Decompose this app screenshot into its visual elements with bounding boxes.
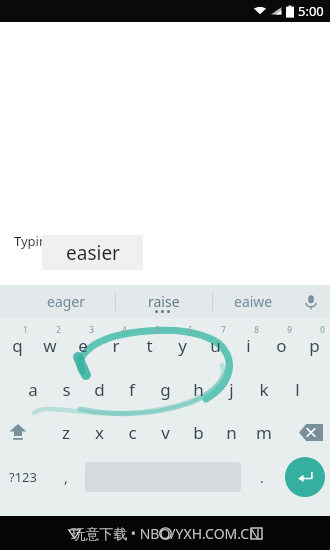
button[interactable]: p (298, 331, 330, 359)
staticText: r (112, 334, 120, 357)
staticText: x (95, 421, 104, 444)
staticText: eager (47, 292, 86, 311)
staticText: l (295, 378, 300, 401)
button[interactable]: ?123 (2, 460, 44, 494)
staticText: , (64, 468, 68, 487)
button[interactable]: g (149, 375, 181, 403)
staticText: 7 (221, 324, 226, 335)
button[interactable]: q (1, 331, 33, 359)
staticText: 0 (320, 324, 325, 335)
staticText: u (210, 334, 221, 357)
button[interactable]: Enter (285, 457, 325, 497)
staticText: v (161, 421, 170, 444)
staticText: z (62, 421, 70, 444)
button[interactable]: j (215, 375, 247, 403)
button[interactable]: , (52, 460, 80, 494)
staticText: Typing is (14, 232, 68, 250)
staticText: 玩意下载 • NBO/YXH.COM.CN (71, 524, 260, 543)
staticText: y (178, 334, 187, 357)
staticText: raise (148, 292, 180, 311)
button[interactable]: k (248, 375, 280, 403)
staticText: f (129, 378, 135, 401)
button[interactable]: Home (148, 516, 182, 550)
button[interactable]: m (248, 418, 280, 446)
button[interactable]: l (281, 375, 313, 403)
staticText: h (193, 378, 204, 401)
staticText: i (246, 334, 251, 357)
staticText: a (28, 378, 38, 401)
staticText: 1 (23, 324, 28, 335)
button[interactable]: o (265, 331, 297, 359)
staticText: 2 (56, 324, 61, 335)
button[interactable]: d (83, 375, 115, 403)
button[interactable]: n (215, 418, 247, 446)
button[interactable]: . (248, 460, 276, 494)
staticText: q (12, 334, 23, 357)
staticText: j (229, 378, 234, 401)
button[interactable]: Back (57, 516, 91, 550)
button[interactable]: v (149, 418, 181, 446)
staticText: e (78, 334, 88, 357)
staticText: w (43, 334, 57, 357)
staticText: 5:00 (298, 2, 324, 20)
staticText: 4 (122, 324, 127, 335)
button[interactable]: raise (116, 285, 212, 318)
staticText: c (128, 421, 137, 444)
button[interactable]: Voice input (296, 287, 326, 317)
button[interactable]: s (50, 375, 82, 403)
staticText: ?123 (9, 468, 37, 486)
button[interactable]: z (50, 418, 82, 446)
staticText: g (160, 378, 171, 401)
button[interactable]: x (83, 418, 115, 446)
button[interactable]: Recent apps (239, 516, 273, 550)
button[interactable]: f (116, 375, 148, 403)
staticText: t (146, 334, 153, 357)
staticText: 9 (287, 324, 292, 335)
button[interactable]: b (182, 418, 214, 446)
button[interactable]: w (34, 331, 66, 359)
button[interactable]: eaiwe (213, 285, 293, 318)
button[interactable]: eager (18, 285, 115, 318)
button[interactable]: a (17, 375, 49, 403)
button[interactable]: u (199, 331, 231, 359)
button[interactable]: Shift (2, 416, 34, 448)
staticText: . (260, 468, 264, 487)
staticText: k (259, 378, 269, 401)
staticText: 3 (89, 324, 94, 335)
button[interactable]: i (232, 331, 264, 359)
button[interactable]: r (100, 331, 132, 359)
staticText: m (256, 421, 272, 444)
staticText: easier (66, 240, 120, 266)
staticText: 5 (155, 324, 160, 335)
button[interactable]: e (67, 331, 99, 359)
button[interactable]: Backspace (295, 416, 327, 448)
staticText: eaiwe (234, 292, 273, 311)
staticText: d (94, 378, 105, 401)
staticText: n (226, 421, 237, 444)
button[interactable]: c (116, 418, 148, 446)
staticText: 6 (188, 324, 193, 335)
button[interactable]: h (182, 375, 214, 403)
staticText: o (276, 334, 287, 357)
button[interactable]: y (166, 331, 198, 359)
staticText: 8 (254, 324, 259, 335)
staticText: p (309, 334, 320, 357)
staticText: s (62, 378, 71, 401)
button[interactable]: t (133, 331, 165, 359)
staticText: b (193, 421, 204, 444)
